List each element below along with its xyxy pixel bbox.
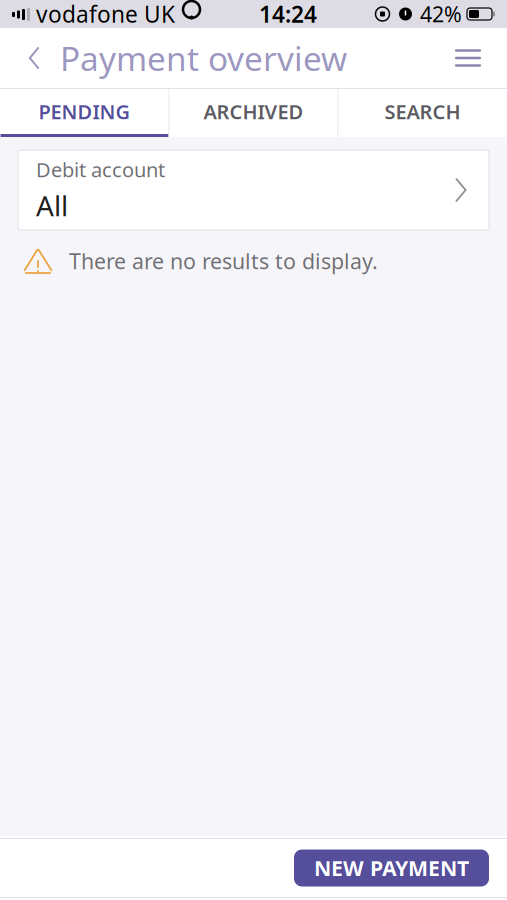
button[interactable]: NEW PAYMENT — [294, 849, 489, 886]
button[interactable]: Menu — [441, 30, 495, 86]
staticText: Debit account — [36, 156, 165, 183]
staticText: PENDING — [38, 98, 130, 125]
button[interactable]: Debit account — [18, 150, 489, 230]
staticText: vodafone UK — [36, 0, 175, 29]
staticText: Payment overview — [60, 36, 347, 80]
staticText: SEARCH — [384, 98, 460, 125]
staticText: All — [36, 187, 68, 224]
staticText: ARCHIVED — [203, 98, 303, 125]
button[interactable]: PENDING — [0, 89, 168, 137]
button[interactable]: ARCHIVED — [169, 89, 337, 137]
button[interactable]: Back — [12, 30, 56, 86]
button[interactable]: SEARCH — [338, 89, 506, 137]
staticText: NEW PAYMENT — [314, 854, 469, 882]
staticText: 42% — [420, 0, 462, 28]
staticText: There are no results to display. — [69, 247, 378, 275]
staticText: 14:24 — [259, 0, 317, 29]
